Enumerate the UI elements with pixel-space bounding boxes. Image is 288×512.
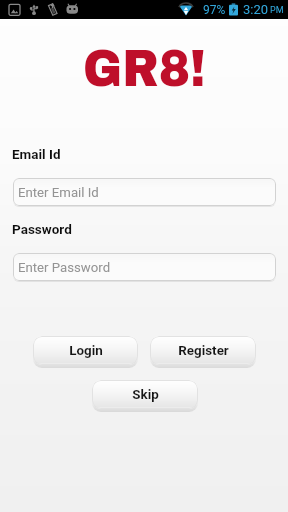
button[interactable]: Enter Email Id bbox=[13, 178, 276, 206]
staticText: 3:20 bbox=[243, 2, 269, 17]
staticText: Email Id bbox=[12, 146, 61, 162]
staticText: Login bbox=[69, 343, 103, 359]
staticText: Enter Email Id bbox=[18, 185, 99, 200]
button[interactable]: Skip bbox=[92, 380, 198, 409]
button[interactable]: Register bbox=[150, 336, 256, 365]
staticText: Skip bbox=[132, 387, 159, 403]
button[interactable]: Enter Password bbox=[13, 253, 276, 281]
staticText: Register bbox=[178, 343, 229, 359]
button[interactable]: Login bbox=[33, 336, 138, 365]
staticText: PM bbox=[270, 5, 284, 16]
staticText: Enter Password bbox=[18, 260, 111, 275]
staticText: GR8! bbox=[83, 42, 206, 97]
staticText: Password bbox=[12, 221, 72, 237]
staticText: 97% bbox=[203, 3, 226, 17]
